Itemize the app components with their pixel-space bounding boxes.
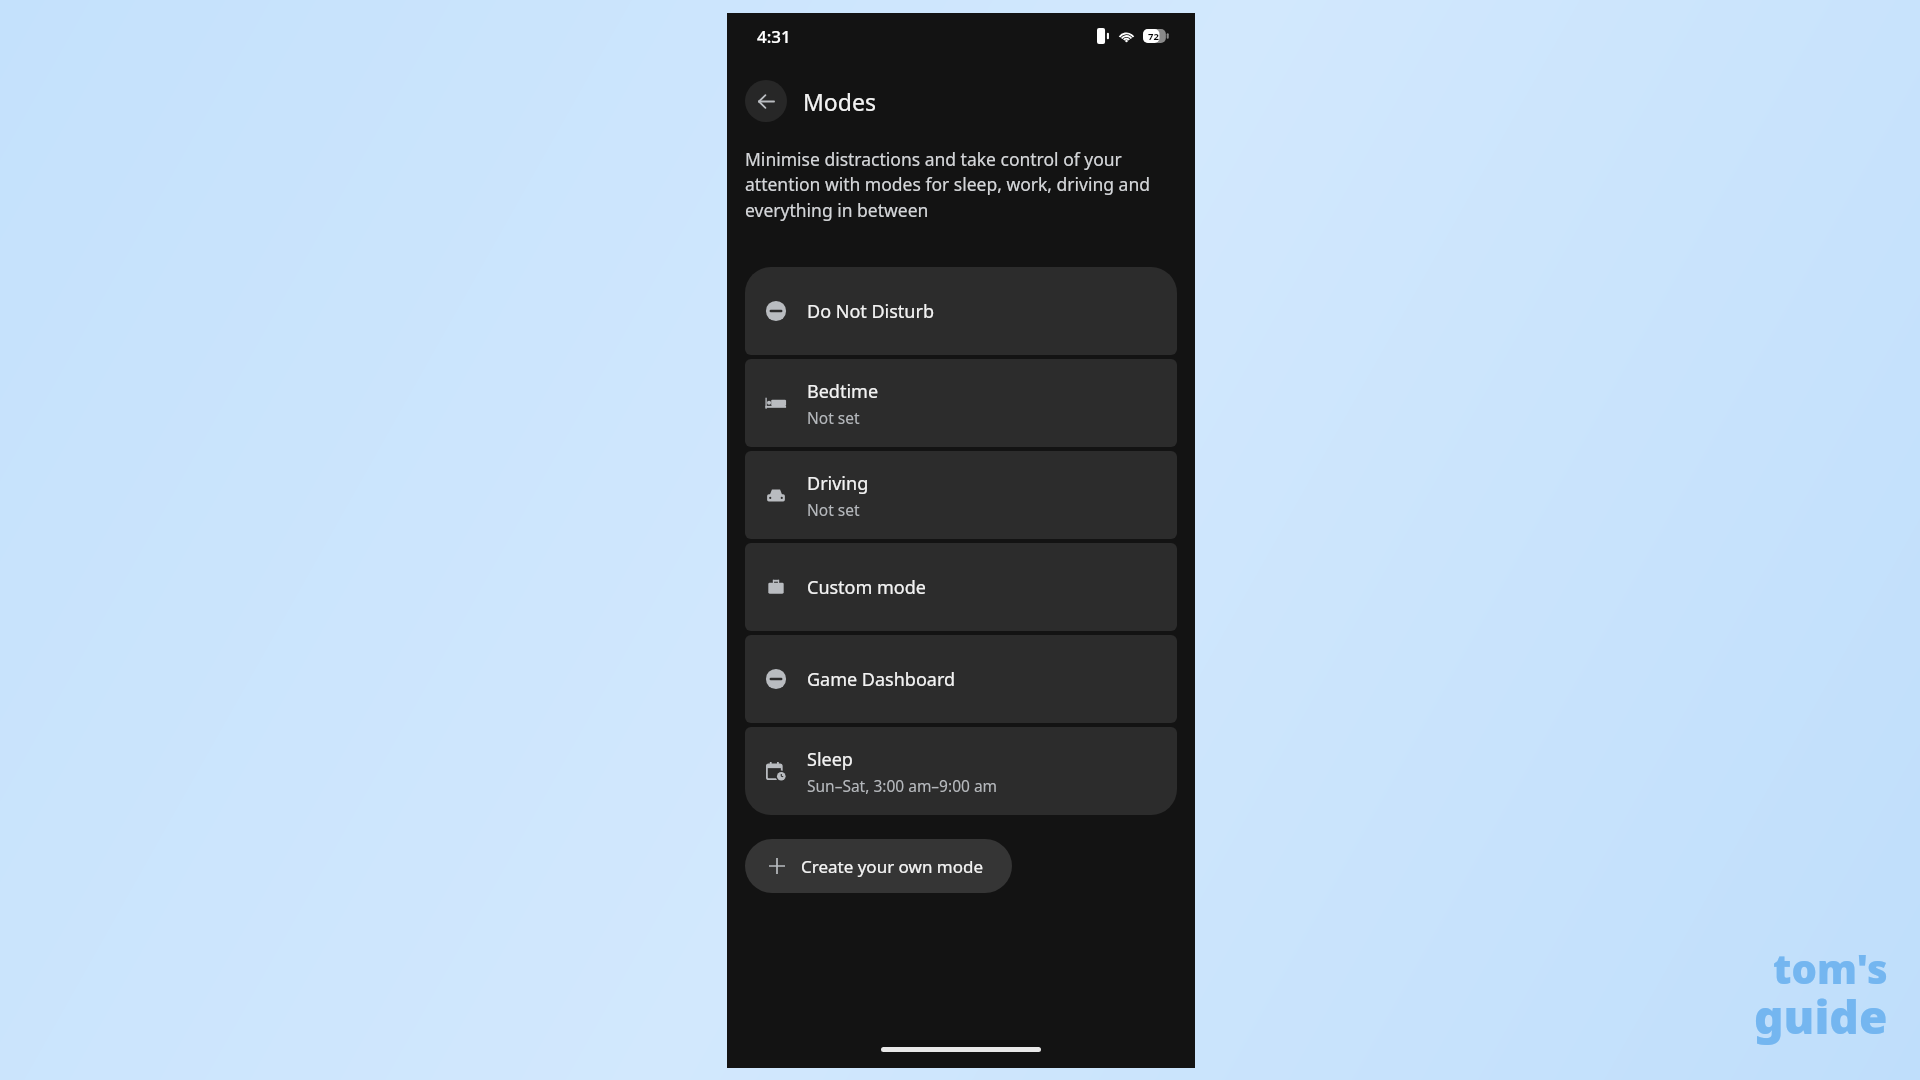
button[interactable]: Create your own mode	[745, 839, 1012, 893]
button[interactable]: Game Dashboard	[745, 635, 1177, 723]
button[interactable]: Bedtime	[745, 359, 1177, 447]
staticText: Do Not Disturb	[807, 299, 934, 324]
staticText: Game Dashboard	[807, 667, 956, 692]
staticText: tom's	[1773, 941, 1888, 995]
staticText: Modes	[803, 86, 876, 117]
button[interactable]: Custom mode	[745, 543, 1177, 631]
staticText: Custom mode	[807, 575, 926, 600]
button[interactable]: Sleep	[745, 727, 1177, 815]
staticText: 72	[1148, 30, 1159, 43]
button[interactable]: Do Not Disturb	[745, 267, 1177, 355]
staticText: Driving	[807, 471, 869, 496]
staticText: Bedtime	[807, 379, 879, 404]
staticText: 4:31	[757, 25, 791, 48]
button[interactable]: Back	[745, 80, 787, 122]
staticText: Not set	[807, 407, 860, 428]
staticText: Sun–Sat, 3:00 am–9:00 am	[807, 775, 998, 796]
staticText: Sleep	[807, 747, 853, 772]
staticText: guide	[1754, 985, 1888, 1048]
staticText: Not set	[807, 499, 860, 520]
staticText: Minimise distractions and take control o…	[745, 147, 1173, 223]
button[interactable]: Driving	[745, 451, 1177, 539]
staticText: Create your own mode	[801, 855, 984, 878]
